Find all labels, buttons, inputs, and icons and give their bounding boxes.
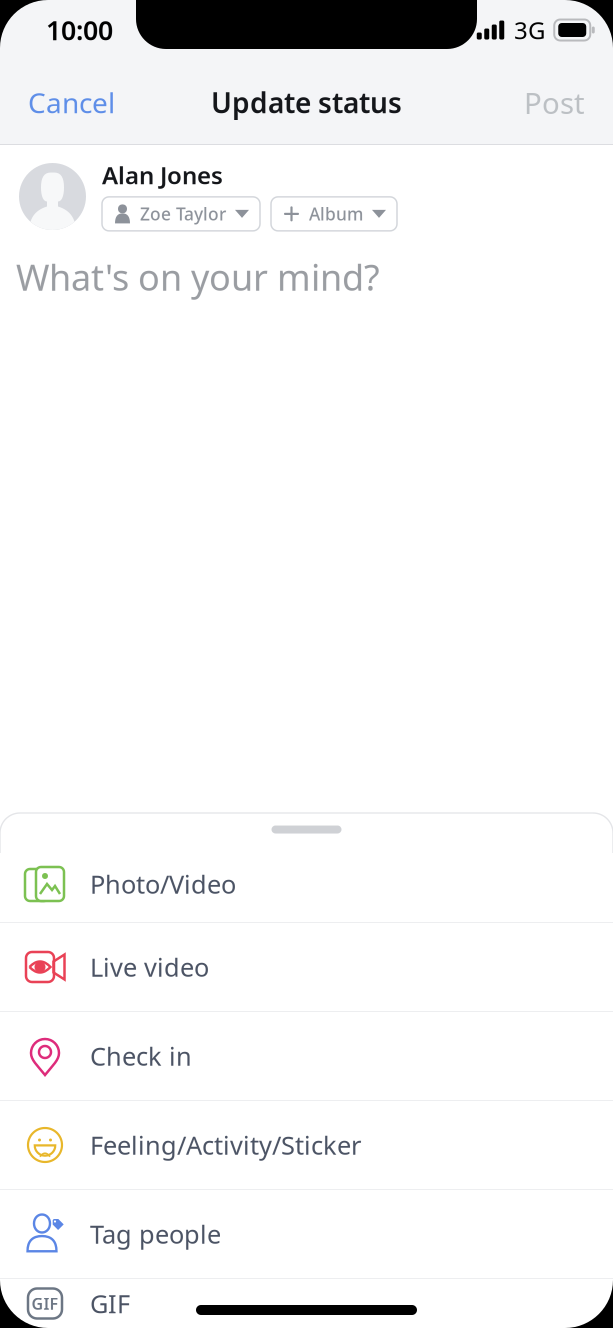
button[interactable]: Photo/Video	[0, 846, 613, 922]
staticText: GIF	[31, 1293, 58, 1314]
staticText: Tag people	[90, 1217, 221, 1251]
staticText: 10:00	[46, 12, 113, 48]
button[interactable]: Album	[271, 197, 397, 231]
staticText: Check in	[90, 1039, 192, 1073]
button[interactable]: Check in	[0, 1012, 613, 1100]
button[interactable]: Tag people	[0, 1190, 613, 1278]
staticText: Feeling/Activity/Sticker	[90, 1128, 361, 1162]
staticText: Alan Jones	[102, 159, 223, 191]
staticText: Zoe Taylor	[140, 202, 226, 225]
staticText: Live video	[90, 950, 209, 984]
button[interactable]: Live video	[0, 923, 613, 1011]
button[interactable]: Zoe Taylor	[102, 197, 260, 231]
staticText: What's on your mind?	[16, 253, 380, 301]
staticText: 3G	[514, 14, 545, 46]
staticText: Photo/Video	[90, 867, 236, 901]
staticText: GIF	[90, 1287, 130, 1320]
staticText: Update status	[211, 84, 402, 121]
button[interactable]: Post	[510, 60, 613, 145]
button[interactable]: Feeling/Activity/Sticker	[0, 1101, 613, 1189]
button[interactable]: Cancel	[0, 60, 129, 145]
button[interactable]: GIF	[0, 1279, 613, 1328]
staticText: Album	[309, 202, 363, 225]
staticText: Cancel	[28, 84, 115, 121]
staticText: Post	[524, 83, 585, 122]
